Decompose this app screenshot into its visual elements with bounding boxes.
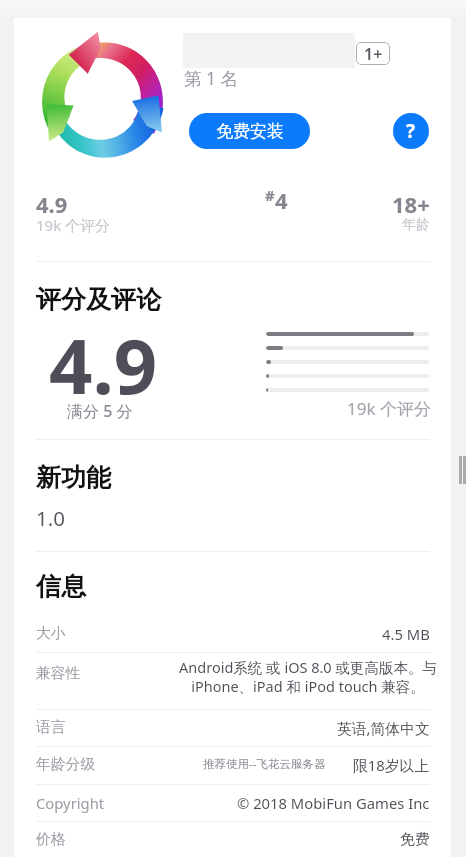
staticText: 满分 5 分	[67, 400, 133, 422]
staticText: 1+	[364, 43, 383, 65]
staticText: #	[265, 185, 275, 205]
button[interactable]: 免费安装	[189, 113, 310, 149]
staticText: 1.0	[36, 504, 65, 532]
staticText: ?	[406, 118, 416, 144]
staticText: 免费安装	[216, 121, 284, 142]
staticText: 限18岁以上	[353, 755, 430, 775]
staticText: 4.9	[36, 189, 68, 219]
staticText: Android系统 或 iOS 8.0 或更高版本。与 iPhone、iPad …	[174, 657, 442, 696]
staticText: © 2018 MobiFun Games Inc	[237, 793, 430, 813]
staticText: 免费	[400, 830, 430, 849]
button[interactable]: 语言	[36, 709, 430, 746]
button[interactable]: 大小	[36, 615, 430, 652]
staticText: 第 1 名	[184, 66, 239, 90]
staticText: Copyright	[36, 793, 105, 813]
staticText: 信息	[36, 571, 86, 602]
staticText: 4.5 MB	[382, 624, 430, 644]
button[interactable]: Copyright	[36, 784, 430, 821]
staticText: 英语,简体中文	[337, 718, 430, 738]
staticText: 19k 个评分	[347, 397, 431, 420]
staticText: 4	[275, 185, 288, 215]
staticText: 推荐使用--飞花云服务器	[203, 756, 326, 772]
staticText: 新功能	[36, 462, 111, 493]
staticText: 4.9	[49, 313, 158, 417]
staticText: 价格	[36, 830, 66, 849]
button[interactable]: 价格	[36, 821, 430, 857]
button[interactable]: 年龄分级	[36, 746, 430, 783]
staticText: 年龄	[402, 216, 430, 234]
staticText: 语言	[36, 718, 66, 737]
button[interactable]: Help	[393, 113, 429, 149]
staticText: 19k 个评分	[36, 215, 111, 235]
staticText: 年龄分级	[36, 755, 96, 774]
staticText: 大小	[36, 624, 66, 643]
staticText: 18+	[392, 189, 430, 219]
button[interactable]: Age rating 1 plus	[356, 42, 390, 65]
staticText: 评分及评论	[36, 284, 161, 315]
staticText: 兼容性	[36, 664, 81, 683]
